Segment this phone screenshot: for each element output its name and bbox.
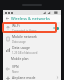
staticText: Connected to Home xyxy=(12,29,37,33)
button[interactable]: VPN xyxy=(3,63,61,74)
staticText: Airplane mode xyxy=(12,75,36,80)
staticText: VPN xyxy=(12,64,19,69)
staticText: Mobile network xyxy=(12,34,37,39)
staticText: Mobile plan xyxy=(11,57,29,61)
button[interactable]: Airplane mode xyxy=(3,74,61,80)
staticText: Wi-Fi xyxy=(12,23,20,28)
staticText: Wireless & networks xyxy=(11,16,50,21)
button[interactable]: Data usage xyxy=(3,44,61,55)
button[interactable]: Back xyxy=(5,16,10,21)
other: More xyxy=(56,76,59,79)
button[interactable]: Toggle Wi-Fi xyxy=(53,26,59,30)
staticText: Data usage xyxy=(12,45,31,50)
staticText: 1.25 GB of data used xyxy=(12,51,38,55)
staticText: Data usage xyxy=(12,40,26,44)
button[interactable]: Wi-Fi xyxy=(3,22,61,33)
button[interactable]: Mobile network xyxy=(3,33,61,44)
staticText: None xyxy=(12,70,19,74)
